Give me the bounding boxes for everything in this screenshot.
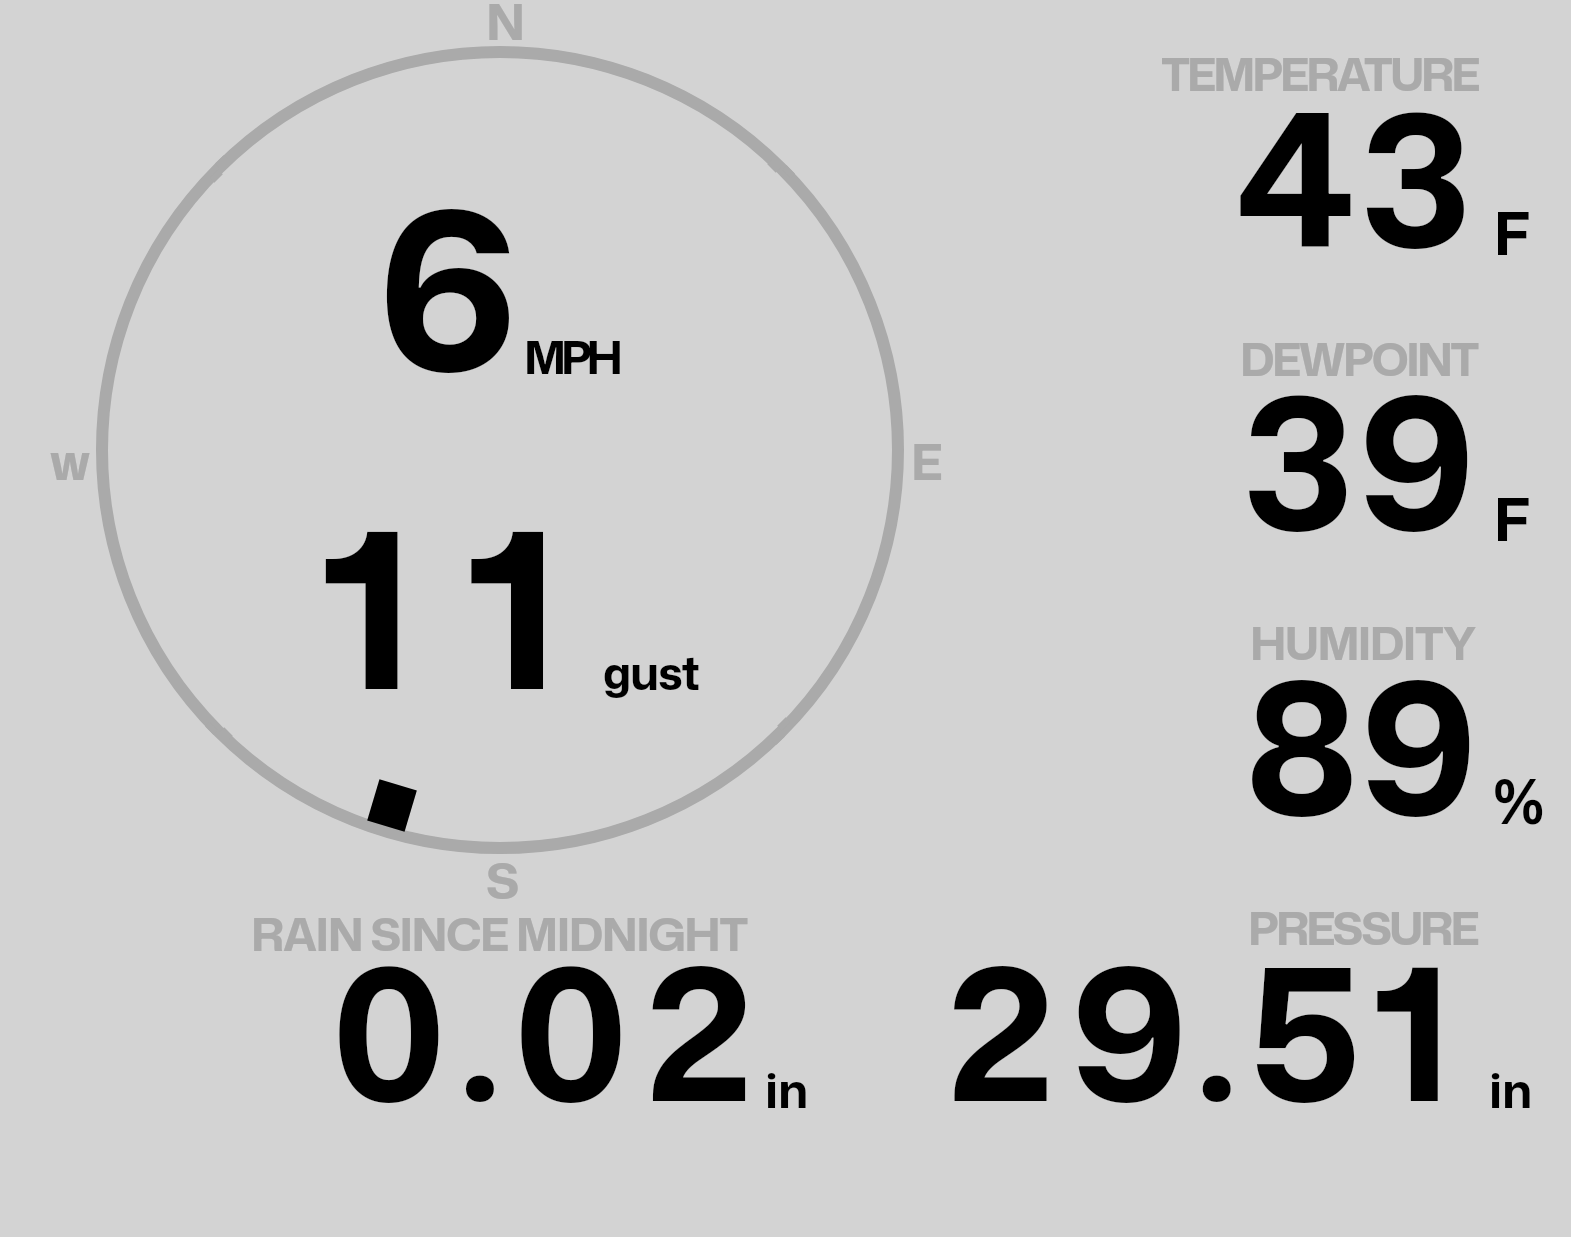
button[interactable]: Rain since midnight reading xyxy=(240,900,820,1120)
button[interactable]: Wind compass xyxy=(95,45,905,855)
staticText: S xyxy=(486,844,520,915)
button[interactable]: Pressure reading xyxy=(900,895,1560,1120)
staticText: MPH xyxy=(524,324,618,389)
staticText: gust xyxy=(603,640,700,705)
button[interactable]: Temperature reading xyxy=(1120,40,1570,270)
staticText: 0.02 xyxy=(332,900,771,1159)
staticText: PRESSURE xyxy=(1248,895,1477,960)
staticText: in xyxy=(765,1056,809,1124)
button[interactable]: Humidity reading xyxy=(1120,610,1570,840)
staticText: TEMPERATURE xyxy=(1161,41,1478,106)
staticText: HUMIDITY xyxy=(1250,610,1475,675)
staticText: 29.51 xyxy=(948,900,1466,1159)
staticText: DEWPOINT xyxy=(1240,326,1477,391)
staticText: RAIN SINCE MIDNIGHT xyxy=(251,901,748,966)
staticText: N xyxy=(486,0,526,56)
staticText: 43 xyxy=(1236,46,1478,305)
staticText: 89 xyxy=(1246,614,1478,873)
staticText: 6 xyxy=(378,129,518,442)
staticText: F xyxy=(1494,478,1531,560)
staticText: 39 xyxy=(1244,329,1478,588)
staticText: % xyxy=(1492,756,1546,843)
staticText: E xyxy=(911,425,943,496)
staticText: F xyxy=(1494,192,1531,274)
staticText: in xyxy=(1489,1056,1533,1124)
button[interactable]: Dewpoint reading xyxy=(1120,325,1570,555)
staticText: 11 xyxy=(321,451,613,758)
staticText: w xyxy=(50,425,91,496)
